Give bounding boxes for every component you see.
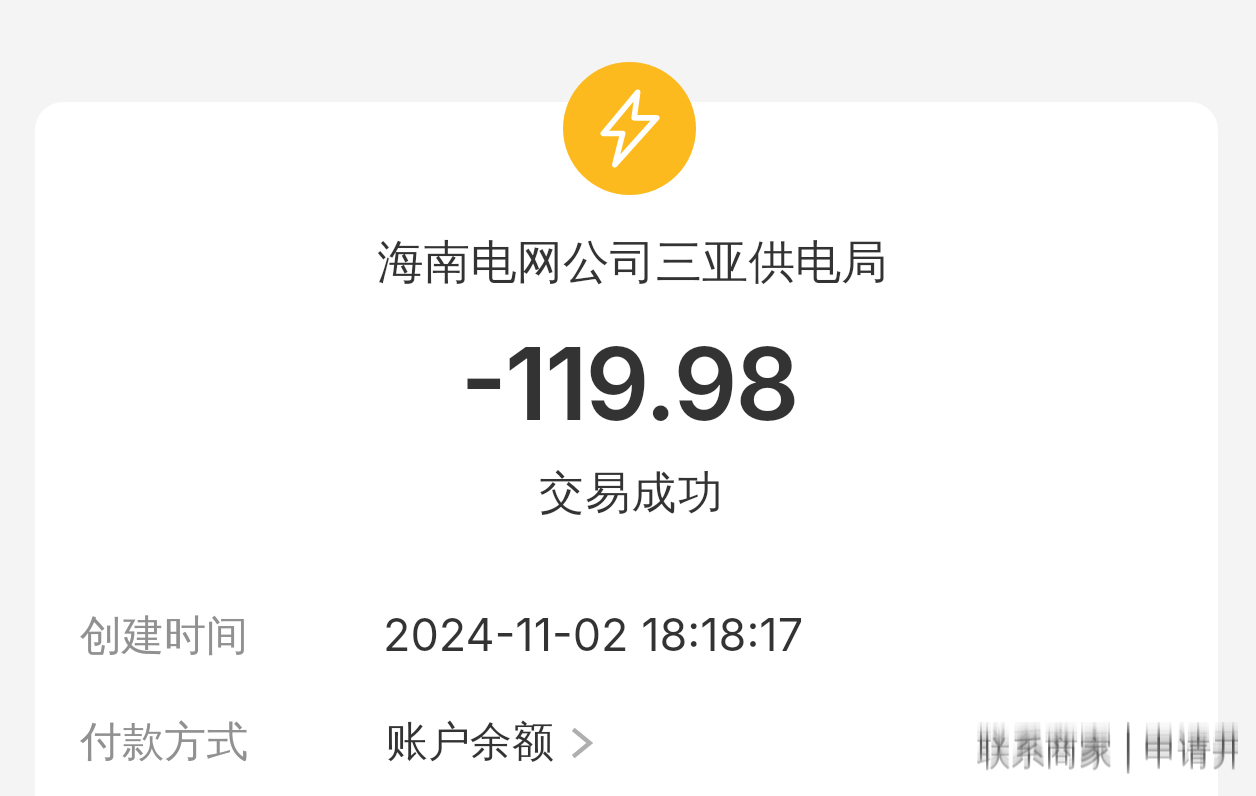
other: Payment method details [570, 726, 593, 760]
button[interactable] [35, 698, 1218, 786]
staticText: 付款方式 [80, 716, 248, 769]
staticText: 创建时间 [80, 610, 248, 663]
staticText: -119.98 [460, 323, 798, 444]
staticText: 账户余额 [386, 716, 554, 769]
staticText: 海南电网公司三亚供电局 [377, 233, 888, 291]
staticText: 2024-11-02 18:18:17 [383, 607, 804, 661]
other: Electricity bill [563, 62, 696, 195]
staticText: 交易成功 [539, 465, 724, 522]
